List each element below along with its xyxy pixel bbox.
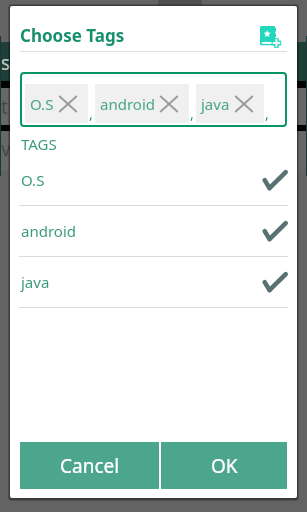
staticText: , [190,104,194,123]
button[interactable]: java [10,257,297,308]
button[interactable]: java [201,84,254,123]
staticText: v [1,136,11,162]
staticText: java [21,272,50,292]
button[interactable]: Cancel [20,442,159,489]
button[interactable]: android [10,206,297,257]
staticText: , [265,104,269,123]
staticText: Cancel [60,453,120,479]
staticText: OK [211,453,238,479]
staticText: O.S [21,170,45,190]
staticText: android [100,94,155,114]
staticText: t [1,94,8,120]
button[interactable]: OK [161,442,287,489]
button[interactable]: android [100,84,179,123]
staticText: android [21,221,76,241]
staticText: Choose Tags [20,24,125,47]
staticText: TAGS [21,134,57,154]
staticText: O.S [30,94,54,114]
staticText: s [1,50,11,76]
staticText: , [89,104,93,123]
staticText: java [201,94,230,114]
button[interactable]: Add new tag [254,20,286,52]
button[interactable]: O.S [10,155,297,206]
button[interactable]: O.S [30,84,78,123]
